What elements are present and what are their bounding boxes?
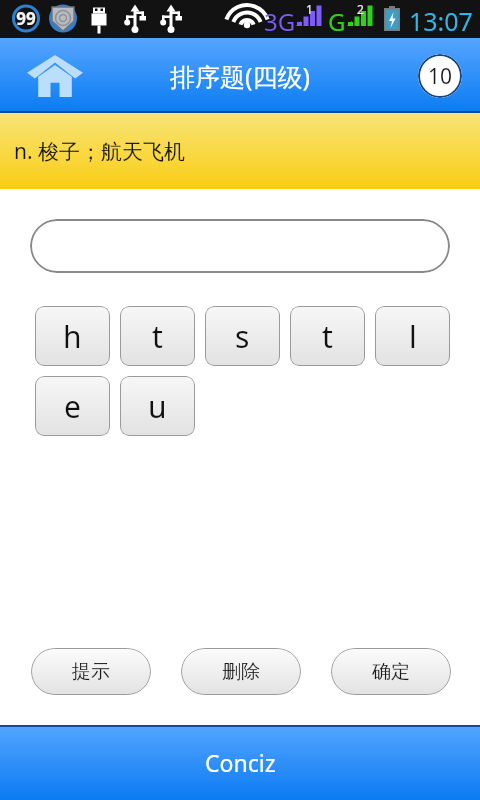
button[interactable]: Conciz [0,725,480,800]
button[interactable]: 提示 [31,648,151,695]
button[interactable]: t [290,306,365,366]
staticText: 确定 [372,660,410,684]
staticText: Conciz [205,747,276,778]
button[interactable]: 删除 [181,648,301,695]
button[interactable]: 10 [418,54,462,98]
staticText: 1 [306,1,313,17]
button[interactable]: 确定 [331,648,451,695]
staticText: n. 梭子；航天飞机 [14,137,186,166]
button[interactable]: l [375,306,450,366]
staticText: u [148,386,167,427]
button[interactable]: e [35,376,110,436]
staticText: e [64,386,81,427]
staticText: 10 [428,62,453,91]
button[interactable]: h [35,306,110,366]
staticText: s [235,316,250,357]
staticText: t [322,316,333,357]
button[interactable]: Home [0,38,110,113]
staticText: h [63,316,82,357]
staticText: 2 [357,1,364,17]
staticText: 排序题(四级) [170,59,311,93]
button[interactable]: s [205,306,280,366]
button[interactable]: t [120,306,195,366]
staticText: 提示 [72,660,110,684]
staticText: 99 [15,7,37,30]
button[interactable] [30,219,450,273]
staticText: 删除 [222,660,260,684]
staticText: 3G [264,5,296,38]
staticText: t [152,316,163,357]
staticText: 13:07 [409,4,473,38]
staticText: l [409,316,417,357]
button[interactable]: u [120,376,195,436]
staticText: G [328,5,346,38]
